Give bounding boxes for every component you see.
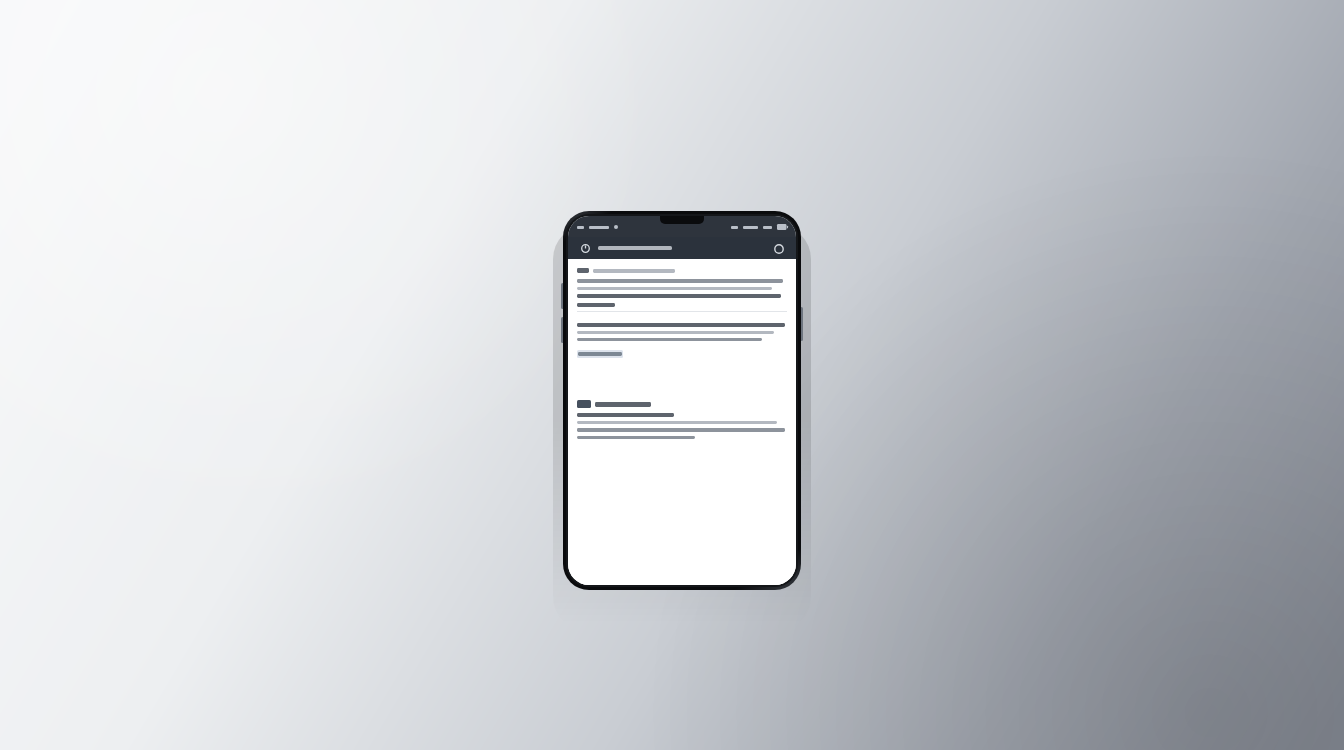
button[interactable]: Account xyxy=(769,239,788,258)
button[interactable]: Source badge xyxy=(577,400,591,408)
button[interactable]: Menu xyxy=(576,239,595,258)
button[interactable] xyxy=(577,350,623,358)
